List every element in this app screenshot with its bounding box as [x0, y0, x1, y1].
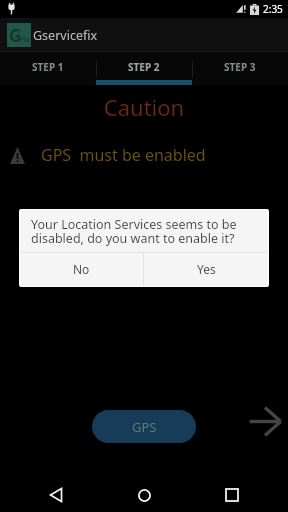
staticText: G — [9, 24, 22, 47]
staticText: Yes — [197, 261, 216, 277]
staticText: STEP 1 — [32, 60, 64, 74]
staticText: Fix — [20, 35, 30, 45]
button[interactable]: Recents — [212, 475, 252, 512]
button[interactable]: STEP 3 — [192, 52, 288, 85]
button[interactable]: Back — [36, 475, 76, 512]
staticText: GPS must be enabled — [41, 144, 206, 166]
staticText: STEP 3 — [224, 60, 256, 74]
button[interactable]: No — [20, 253, 143, 286]
staticText: Your Location Services seems to be disab… — [31, 216, 237, 247]
button[interactable]: STEP 1 — [0, 52, 96, 85]
staticText: STEP 2 — [128, 60, 160, 74]
staticText: No — [73, 261, 90, 277]
staticText: GPS — [132, 418, 157, 436]
staticText: 2:35 — [263, 2, 283, 16]
button[interactable]: GPS — [92, 410, 196, 443]
staticText: Caution — [0, 92, 288, 122]
staticText: Gservicefix — [33, 27, 98, 44]
button[interactable]: STEP 2 — [96, 52, 192, 85]
button[interactable]: Next — [245, 401, 285, 441]
button[interactable]: Home — [124, 475, 164, 512]
button[interactable]: Yes — [144, 253, 268, 286]
